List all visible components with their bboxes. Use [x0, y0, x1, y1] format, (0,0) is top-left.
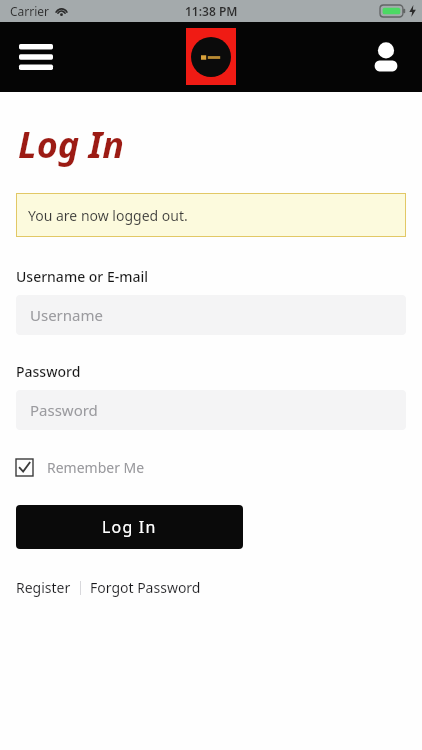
staticText: Forgot Password — [90, 578, 201, 597]
button[interactable]: Log In — [16, 505, 243, 549]
button[interactable]: Menu — [8, 29, 64, 85]
staticText: Carrier — [10, 3, 50, 19]
staticText: Register — [16, 578, 71, 597]
button[interactable]: Remember Me — [16, 458, 145, 477]
button[interactable]: Register — [16, 578, 71, 597]
staticText: Log In — [18, 120, 125, 169]
staticText: Log In — [102, 516, 157, 538]
button[interactable]: Password — [16, 390, 406, 430]
button[interactable]: Account — [360, 31, 412, 83]
staticText: You are now logged out. — [28, 206, 188, 225]
button[interactable]: Home logo — [186, 28, 236, 85]
button[interactable]: Forgot Password — [90, 578, 201, 597]
staticText: 11:38 PM — [185, 3, 238, 19]
staticText: Password — [16, 362, 81, 381]
button[interactable]: Username — [16, 295, 406, 335]
staticText: Username or E-mail — [16, 267, 149, 286]
staticText: Username — [30, 305, 103, 325]
staticText: Remember Me — [47, 458, 145, 477]
staticText: Password — [30, 400, 98, 420]
